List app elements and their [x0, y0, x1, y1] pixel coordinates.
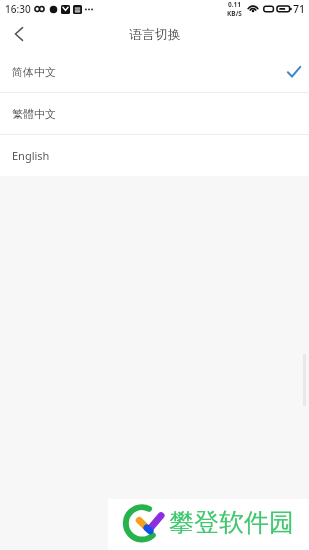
staticText: 语言切换	[129, 26, 181, 42]
staticText: 繁體中文	[12, 107, 56, 121]
staticText: 0.11	[228, 0, 241, 9]
staticText: KB/S	[227, 9, 242, 17]
staticText: 71	[293, 2, 306, 16]
staticText: 简体中文	[12, 65, 56, 79]
button[interactable]: Back	[0, 17, 38, 51]
button[interactable]: English	[0, 135, 309, 176]
staticText: 攀登软件园	[169, 507, 294, 538]
staticText: English	[12, 148, 50, 163]
staticText: 16:30	[5, 2, 31, 16]
button[interactable]: 繁體中文	[0, 93, 309, 134]
button[interactable]: 简体中文	[0, 51, 309, 92]
